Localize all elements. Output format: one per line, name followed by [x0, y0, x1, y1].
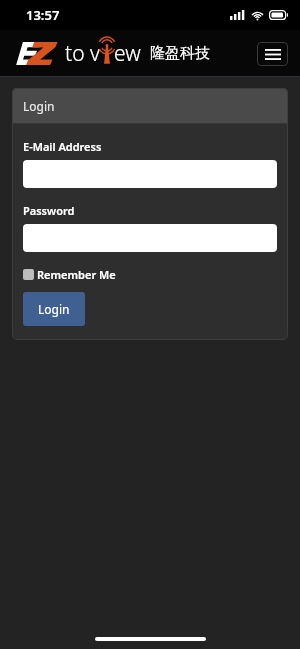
button[interactable]: E-Mail Address input field — [23, 160, 277, 188]
staticText: ew — [114, 39, 141, 68]
button[interactable]: Password input field — [23, 224, 277, 252]
staticText: Login — [23, 98, 55, 114]
button[interactable]: Open navigation menu — [257, 42, 288, 66]
staticText: 隆盈科技 — [150, 44, 210, 63]
staticText: Remember Me — [37, 267, 116, 282]
staticText: to v — [65, 39, 100, 68]
button[interactable]: Login — [23, 292, 85, 326]
button[interactable]: Remember Me — [23, 266, 116, 283]
staticText: Login — [38, 301, 70, 317]
staticText: 13:57 — [26, 6, 60, 24]
staticText: E-Mail Address — [23, 139, 102, 154]
staticText: Password — [23, 203, 75, 218]
